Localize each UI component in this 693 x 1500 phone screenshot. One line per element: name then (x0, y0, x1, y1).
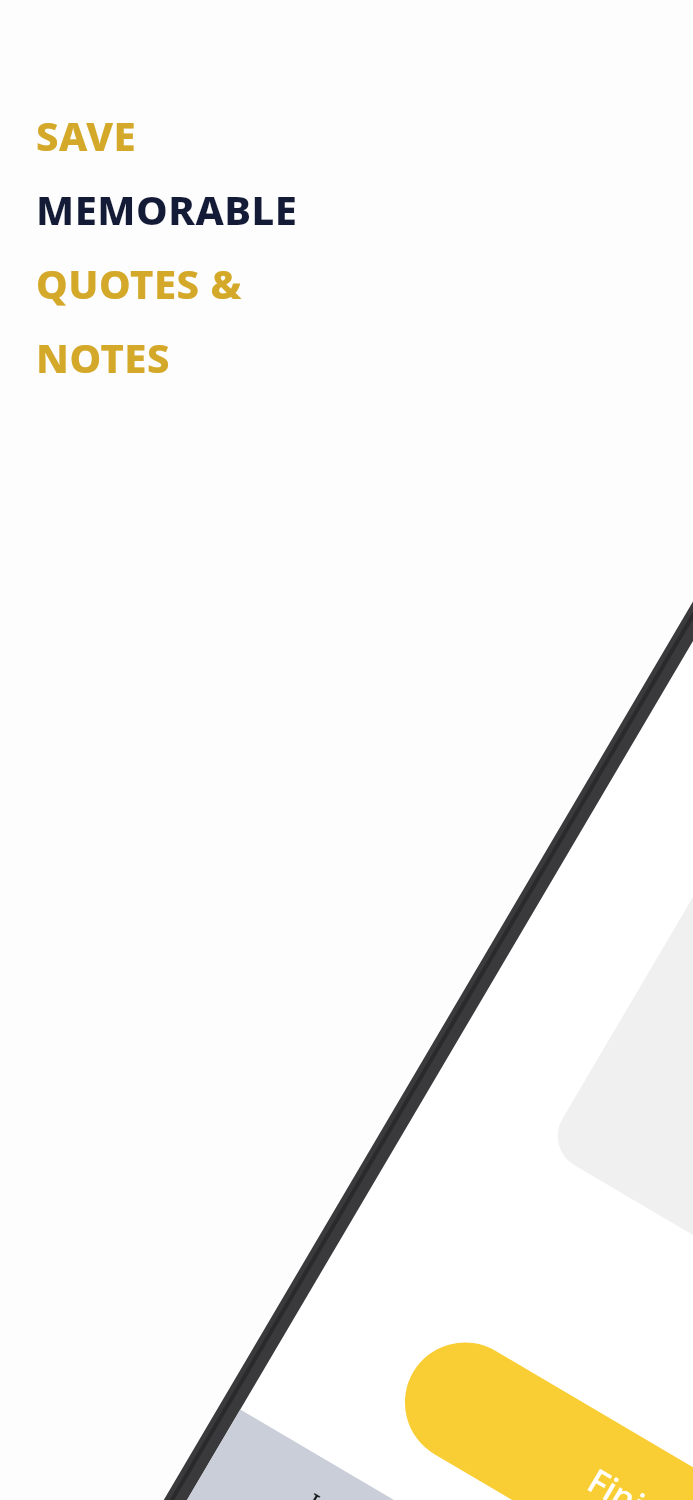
button[interactable]: Note editor with keyboard (0, 0, 693, 1500)
